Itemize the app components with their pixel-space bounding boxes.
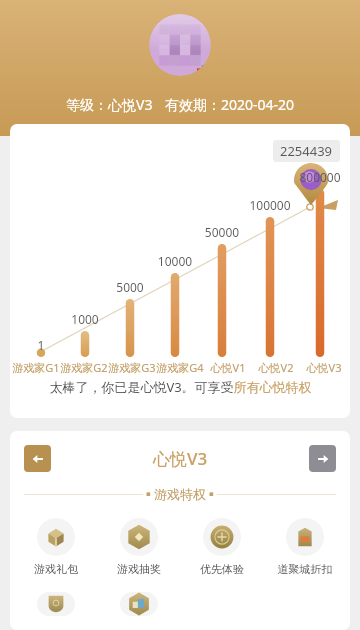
button[interactable]: 专属道具 xyxy=(16,590,96,618)
staticText: 800000 xyxy=(290,169,350,185)
button[interactable]: 游戏抽奖 xyxy=(99,516,179,578)
staticText: 有效期：2020-04-20 xyxy=(165,95,295,114)
staticText: 心悦V3 xyxy=(153,447,208,470)
staticText: 2254439 xyxy=(280,142,333,160)
staticText: 心悦V1 xyxy=(204,360,252,375)
button[interactable]: Previous level xyxy=(24,445,51,472)
staticText: 5000 xyxy=(100,279,160,295)
button[interactable]: Next level xyxy=(309,445,336,472)
staticText: 1 xyxy=(11,337,71,353)
staticText: ▪ xyxy=(209,490,214,498)
staticText: 游戏家G2 xyxy=(60,360,108,375)
button[interactable]: Avatar xyxy=(149,14,211,76)
staticText: 太棒了，你已是心悦V3。可享受所有心悦特权 xyxy=(49,378,312,396)
button[interactable]: 道聚城折扣 xyxy=(265,516,345,578)
button[interactable]: 游戏礼包 xyxy=(16,516,96,578)
staticText: 心悦V2 xyxy=(252,360,300,375)
staticText: 等级：心悦V3 xyxy=(66,95,153,114)
staticText: 游戏家G3 xyxy=(108,360,156,375)
staticText: 10000 xyxy=(145,253,205,269)
staticText: 优先体验 xyxy=(182,562,262,576)
staticText: 游戏家G1 xyxy=(12,360,60,375)
staticText: 游戏礼包 xyxy=(16,562,96,576)
button[interactable]: 图标点亮 xyxy=(99,590,179,618)
staticText: 1000 xyxy=(55,311,115,327)
staticText: 心悦V3 xyxy=(300,360,348,375)
staticText: 100000 xyxy=(240,197,300,213)
staticText: ▪ xyxy=(146,490,151,498)
staticText: 道聚城折扣 xyxy=(265,562,345,576)
staticText: 游戏抽奖 xyxy=(99,562,179,576)
button[interactable]: 优先体验 xyxy=(182,516,262,578)
staticText: 游戏特权 xyxy=(154,486,206,502)
staticText: 50000 xyxy=(192,224,252,240)
staticText: 游戏家G4 xyxy=(156,360,204,375)
